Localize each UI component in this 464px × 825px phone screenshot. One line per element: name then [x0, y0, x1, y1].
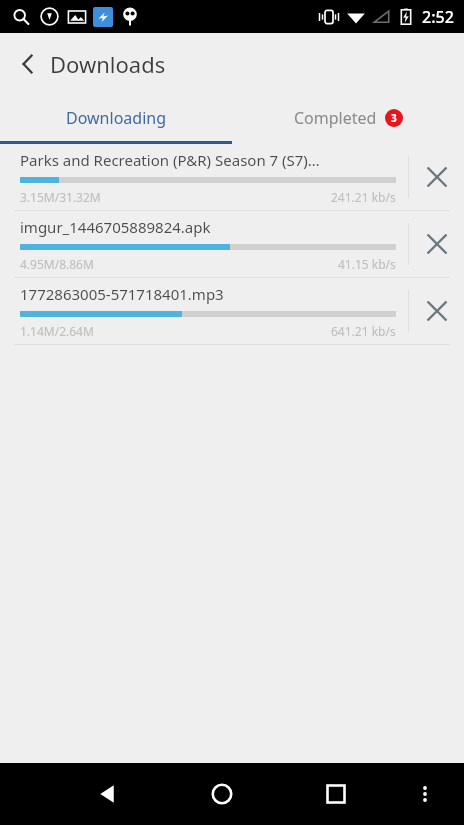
button[interactable]: Cancel download — [409, 278, 464, 344]
staticText: Downloads — [50, 49, 166, 79]
button[interactable]: More options — [405, 774, 445, 814]
button[interactable]: imgur_1446705889824.apk — [0, 211, 464, 277]
staticText: 2:52 — [422, 6, 454, 28]
staticText: 1.14M/2.64M — [20, 323, 94, 339]
staticText: 3 — [391, 111, 397, 125]
button[interactable]: Cancel download — [409, 144, 464, 210]
staticText: imgur_1446705889824.apk — [20, 217, 211, 237]
staticText: 1772863005-571718401.mp3 — [20, 284, 224, 304]
staticText: Downloading — [66, 107, 166, 129]
button[interactable]: Parks and Recreation (P&R) Season 7 (S7)… — [0, 144, 464, 210]
button[interactable]: Home — [198, 770, 246, 818]
staticText: 241.21 kb/s — [331, 189, 396, 205]
staticText: 4.95M/8.86M — [20, 256, 94, 272]
button[interactable]: Recent apps — [312, 770, 360, 818]
staticText: 41.15 kb/s — [338, 256, 396, 272]
button[interactable]: Downloading — [0, 95, 232, 141]
staticText: Parks and Recreation (P&R) Season 7 (S7)… — [20, 150, 320, 170]
staticText: Completed — [294, 107, 377, 129]
button[interactable]: Cancel download — [409, 211, 464, 277]
button[interactable]: Back — [84, 770, 132, 818]
staticText: 641.21 kb/s — [331, 323, 396, 339]
button[interactable]: Back — [8, 44, 48, 84]
button[interactable]: Completed — [232, 95, 464, 141]
staticText: 3.15M/31.32M — [20, 189, 101, 205]
button[interactable]: 1772863005-571718401.mp3 — [0, 278, 464, 344]
